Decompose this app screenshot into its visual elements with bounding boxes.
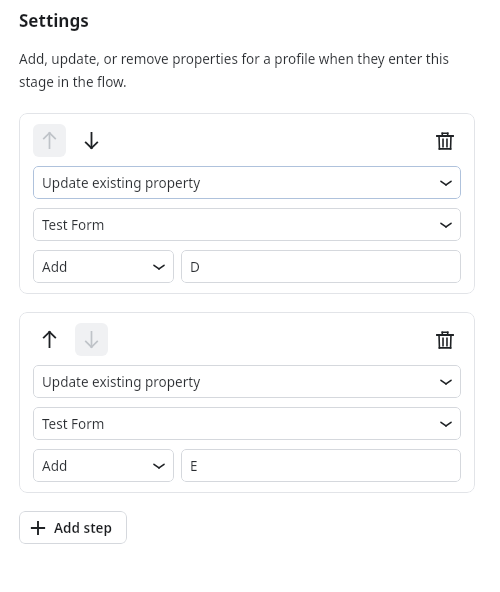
button[interactable]: D [181, 250, 461, 283]
staticText: Update existing property [42, 373, 201, 391]
button[interactable]: Test Form [33, 208, 461, 241]
button[interactable]: Delete step [428, 124, 461, 157]
staticText: Add step [54, 519, 112, 537]
staticText: Add, update, or remove properties for a … [19, 50, 480, 91]
staticText: E [190, 457, 198, 475]
button[interactable]: Move step up [33, 323, 66, 356]
button[interactable]: Move step down [75, 323, 108, 356]
button[interactable]: Test Form [33, 407, 461, 440]
button[interactable]: Update existing property [33, 365, 461, 398]
staticText: Settings [19, 9, 89, 32]
staticText: Add [42, 258, 68, 276]
staticText: Add [42, 457, 68, 475]
button[interactable]: E [181, 449, 461, 482]
button[interactable]: Update existing property [33, 166, 461, 199]
button[interactable]: Add [33, 250, 174, 283]
button[interactable]: Add step [19, 511, 127, 544]
button[interactable]: Move step up [33, 124, 66, 157]
button[interactable]: Move step down [75, 124, 108, 157]
staticText: Test Form [42, 216, 105, 234]
staticText: Test Form [42, 415, 105, 433]
staticText: D [190, 258, 200, 276]
staticText: Update existing property [42, 174, 201, 192]
button[interactable]: Delete step [428, 323, 461, 356]
button[interactable]: Add [33, 449, 174, 482]
